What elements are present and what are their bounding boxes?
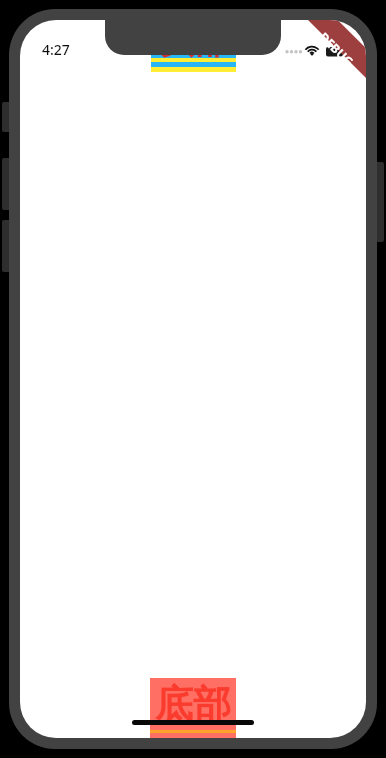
staticText: 底部 xyxy=(155,680,231,728)
button[interactable]: 头部 xyxy=(151,20,236,72)
staticText: 头部 xyxy=(160,20,228,58)
staticText: 4:27 xyxy=(42,40,70,59)
staticText: DEBUG xyxy=(316,28,357,69)
button[interactable]: 底部 xyxy=(150,678,236,738)
other: Signal, Wi-Fi and battery status xyxy=(285,43,349,59)
